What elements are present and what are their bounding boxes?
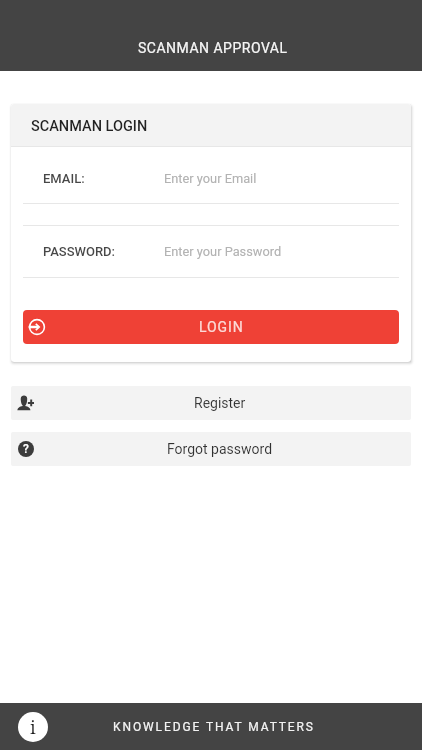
staticText: KNOWLEDGE THAT MATTERS [113,720,315,734]
button[interactable]: Register [11,386,411,420]
staticText: i [30,715,36,740]
staticText: SCANMAN LOGIN [31,118,148,135]
staticText: LOGIN [199,319,244,335]
staticText: EMAIL: [43,171,85,186]
staticText: ? [23,442,29,456]
button[interactable]: LOGIN [23,310,399,344]
staticText: Enter your Password [164,244,282,259]
staticText: Enter your Email [164,171,257,186]
button[interactable]: ? [11,432,411,466]
staticText: PASSWORD: [43,244,116,259]
button[interactable]: Information [18,712,48,742]
staticText: SCANMAN APPROVAL [138,40,288,56]
staticText: Forgot password [167,441,273,457]
button[interactable]: PASSWORD: [11,225,411,278]
staticText: Register [194,395,246,411]
button[interactable]: EMAIL: [11,146,411,204]
